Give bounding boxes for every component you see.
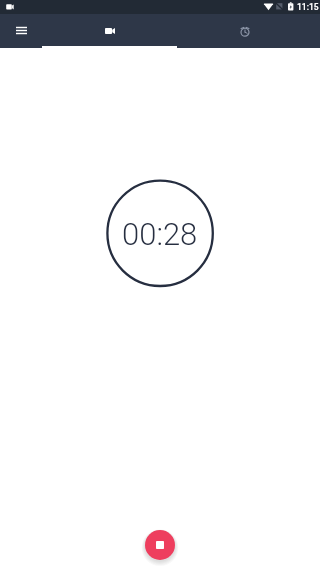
- staticText: 11:15: [297, 2, 319, 12]
- button[interactable]: Stop recording: [145, 530, 175, 560]
- button[interactable]: Open navigation menu: [0, 14, 42, 48]
- button[interactable]: Alarms tab: [177, 14, 312, 48]
- button[interactable]: Recorder tab: [42, 14, 177, 48]
- staticText: 00:28: [122, 216, 198, 252]
